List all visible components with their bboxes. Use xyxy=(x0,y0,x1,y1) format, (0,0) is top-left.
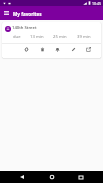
staticText: 10:45 xyxy=(92,1,101,6)
button[interactable]: Refresh xyxy=(21,44,32,55)
button[interactable]: Home xyxy=(46,171,58,183)
button[interactable]: Set alarm xyxy=(52,44,63,55)
button[interactable]: 140th Street xyxy=(2,22,101,58)
button[interactable]: Delete xyxy=(37,44,48,55)
staticText: 140th Street xyxy=(12,25,37,31)
button[interactable]: Back xyxy=(16,171,28,183)
staticText: My favorites xyxy=(13,11,42,17)
button[interactable]: Open navigation menu xyxy=(0,6,13,20)
button[interactable]: Share xyxy=(83,44,94,55)
staticText: due xyxy=(13,34,21,40)
button[interactable]: Recent apps xyxy=(75,171,87,183)
button[interactable]: Edit xyxy=(68,44,79,55)
staticText: 39 min xyxy=(77,34,91,40)
staticText: 13 min xyxy=(30,34,44,40)
staticText: 25 min xyxy=(53,34,67,40)
